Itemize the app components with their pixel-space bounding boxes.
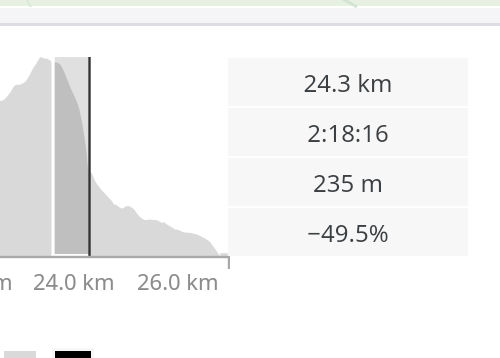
staticText: 24.0 km <box>33 266 115 296</box>
staticText: m <box>0 266 13 296</box>
staticText: 2:18:16 <box>307 116 389 149</box>
staticText: 235 m <box>313 166 383 199</box>
button[interactable]: 235 m <box>228 158 468 206</box>
staticText: −49.5% <box>307 216 389 249</box>
staticText: 24.3 km <box>303 66 393 99</box>
button[interactable]: 24.3 km <box>228 58 468 106</box>
staticText: 26.0 km <box>137 266 219 296</box>
button[interactable]: 2:18:16 <box>228 108 468 156</box>
button[interactable]: −49.5% <box>228 208 468 256</box>
